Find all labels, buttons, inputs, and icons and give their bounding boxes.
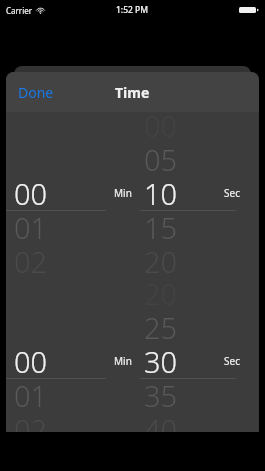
staticText: Sec <box>224 354 240 368</box>
staticText: 35 <box>144 376 178 415</box>
staticText: 05 <box>144 140 178 179</box>
staticText: Sec <box>224 186 240 200</box>
staticText: 1:52 PM <box>116 4 149 16</box>
staticText: Time <box>115 83 150 102</box>
staticText: Min <box>114 354 132 368</box>
staticText: 01 <box>14 208 48 247</box>
staticText: 02 <box>14 242 48 281</box>
staticText: 25 <box>144 308 178 347</box>
staticText: 00 <box>14 342 48 381</box>
staticText: 10 <box>144 174 178 213</box>
staticText: 20 <box>144 242 178 281</box>
staticText: 00 <box>14 174 48 213</box>
staticText: 40 <box>144 410 178 432</box>
staticText: Carrier <box>6 5 33 16</box>
button[interactable]: 00 <box>6 112 152 270</box>
staticText: 30 <box>144 342 178 381</box>
button[interactable]: 20 <box>140 270 259 432</box>
staticText: Min <box>114 186 132 200</box>
button[interactable]: 00 <box>6 270 152 432</box>
button[interactable]: 00 <box>140 112 259 270</box>
staticText: Done <box>18 83 54 102</box>
staticText: 01 <box>14 376 48 415</box>
staticText: 15 <box>144 208 178 247</box>
staticText: 02 <box>14 410 48 432</box>
button[interactable]: Done <box>6 74 66 111</box>
